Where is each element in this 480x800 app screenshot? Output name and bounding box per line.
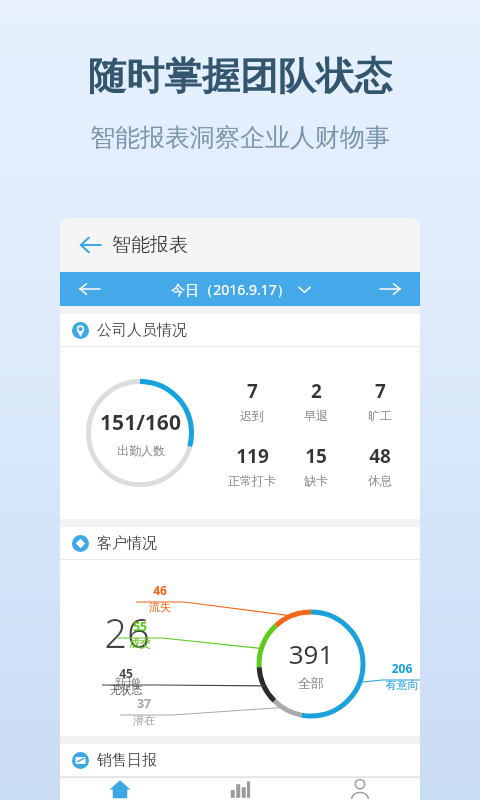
button[interactable]: Previous day — [60, 272, 120, 306]
staticText: 公司人员情况 — [97, 321, 187, 340]
button[interactable]: 销售日报 — [60, 744, 420, 776]
staticText: 26 — [104, 605, 150, 659]
staticText: 46 — [136, 582, 184, 598]
staticText: 新增 — [114, 675, 140, 691]
button[interactable]: 指标 — [180, 778, 300, 800]
staticText: 潜在 — [120, 713, 168, 727]
staticText: 15 — [305, 443, 327, 469]
staticText: 151/160 — [100, 408, 181, 437]
staticText: 55 — [116, 618, 164, 634]
staticText: 缺卡 — [304, 473, 328, 488]
staticText: 智能报表 — [112, 233, 188, 257]
button[interactable]: 我 — [300, 778, 420, 800]
button[interactable]: 公司人员情况 — [60, 314, 420, 346]
staticText: 销售日报 — [97, 751, 157, 770]
button[interactable]: 55 — [116, 618, 164, 650]
button[interactable]: 15 — [284, 443, 348, 488]
button[interactable]: 客户情况 — [60, 527, 420, 559]
button[interactable]: 首页 — [60, 778, 180, 800]
staticText: 391 — [283, 636, 339, 671]
staticText: 48 — [369, 443, 391, 469]
staticText: 37 — [120, 695, 168, 711]
staticText: 119 — [236, 443, 269, 469]
staticText: 休息 — [368, 473, 392, 488]
button[interactable]: 45 — [102, 665, 150, 697]
button[interactable]: Back — [70, 225, 110, 265]
staticText: 智能报表洞察企业人财物事 — [90, 122, 390, 153]
button[interactable]: 46 — [136, 582, 184, 614]
staticText: 2 — [311, 378, 322, 404]
staticText: 206 — [378, 660, 420, 676]
staticText: 旷工 — [368, 408, 392, 423]
button[interactable]: 2 — [284, 378, 348, 423]
staticText: 成交 — [116, 636, 164, 650]
staticText: 客户情况 — [97, 534, 157, 553]
button[interactable]: 今日（2016.9.17） — [120, 272, 360, 306]
staticText: 随时掌握团队状态 — [88, 52, 392, 100]
button[interactable]: 206 — [378, 660, 420, 692]
staticText: 全部 — [283, 675, 339, 691]
button[interactable]: 7 — [348, 378, 412, 423]
button[interactable]: 48 — [348, 443, 412, 488]
staticText: 无状态 — [102, 683, 150, 697]
staticText: 早退 — [304, 408, 328, 423]
button[interactable]: Next day — [360, 272, 420, 306]
staticText: 7 — [247, 378, 258, 404]
staticText: 迟到 — [240, 408, 264, 423]
staticText: 7 — [375, 378, 386, 404]
staticText: 出勤人数 — [117, 443, 165, 458]
staticText: 流失 — [136, 600, 184, 614]
button[interactable]: 7 — [220, 378, 284, 423]
staticText: 今日（2016.9.17） — [171, 280, 291, 299]
staticText: 45 — [102, 665, 150, 681]
button[interactable]: 119 — [220, 443, 284, 488]
button[interactable]: 37 — [120, 695, 168, 727]
staticText: 有意向 — [378, 678, 420, 692]
staticText: 正常打卡 — [228, 473, 276, 488]
